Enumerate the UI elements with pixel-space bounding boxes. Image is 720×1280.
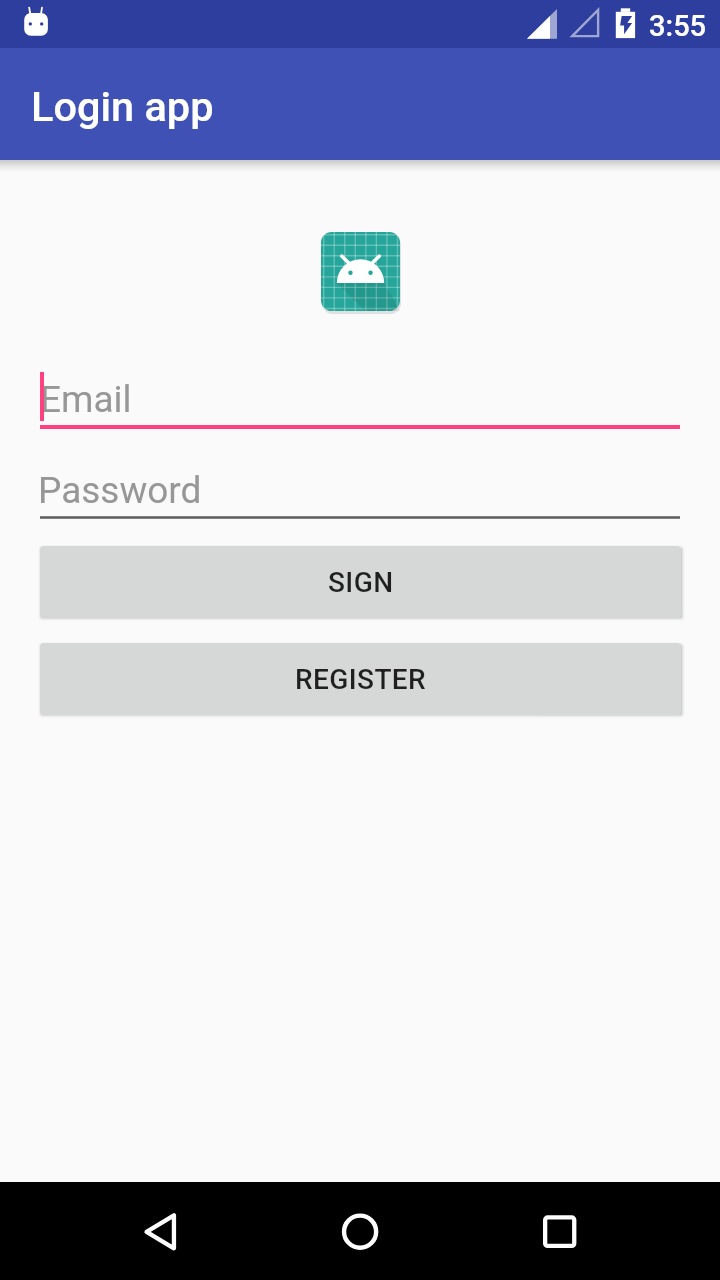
button[interactable]: SIGN: [40, 546, 681, 618]
staticText: Password: [38, 469, 202, 512]
button[interactable]: Password: [40, 455, 680, 519]
staticText: Email: [40, 378, 132, 421]
button[interactable]: Recent apps: [480, 1182, 640, 1280]
button[interactable]: Email: [40, 364, 680, 430]
button[interactable]: Back: [80, 1182, 240, 1280]
button[interactable]: REGISTER: [40, 643, 681, 715]
staticText: REGISTER: [295, 663, 427, 696]
staticText: 3:55: [649, 9, 707, 43]
button[interactable]: Home: [280, 1182, 440, 1280]
staticText: Login app: [31, 82, 214, 131]
staticText: SIGN: [328, 566, 394, 599]
